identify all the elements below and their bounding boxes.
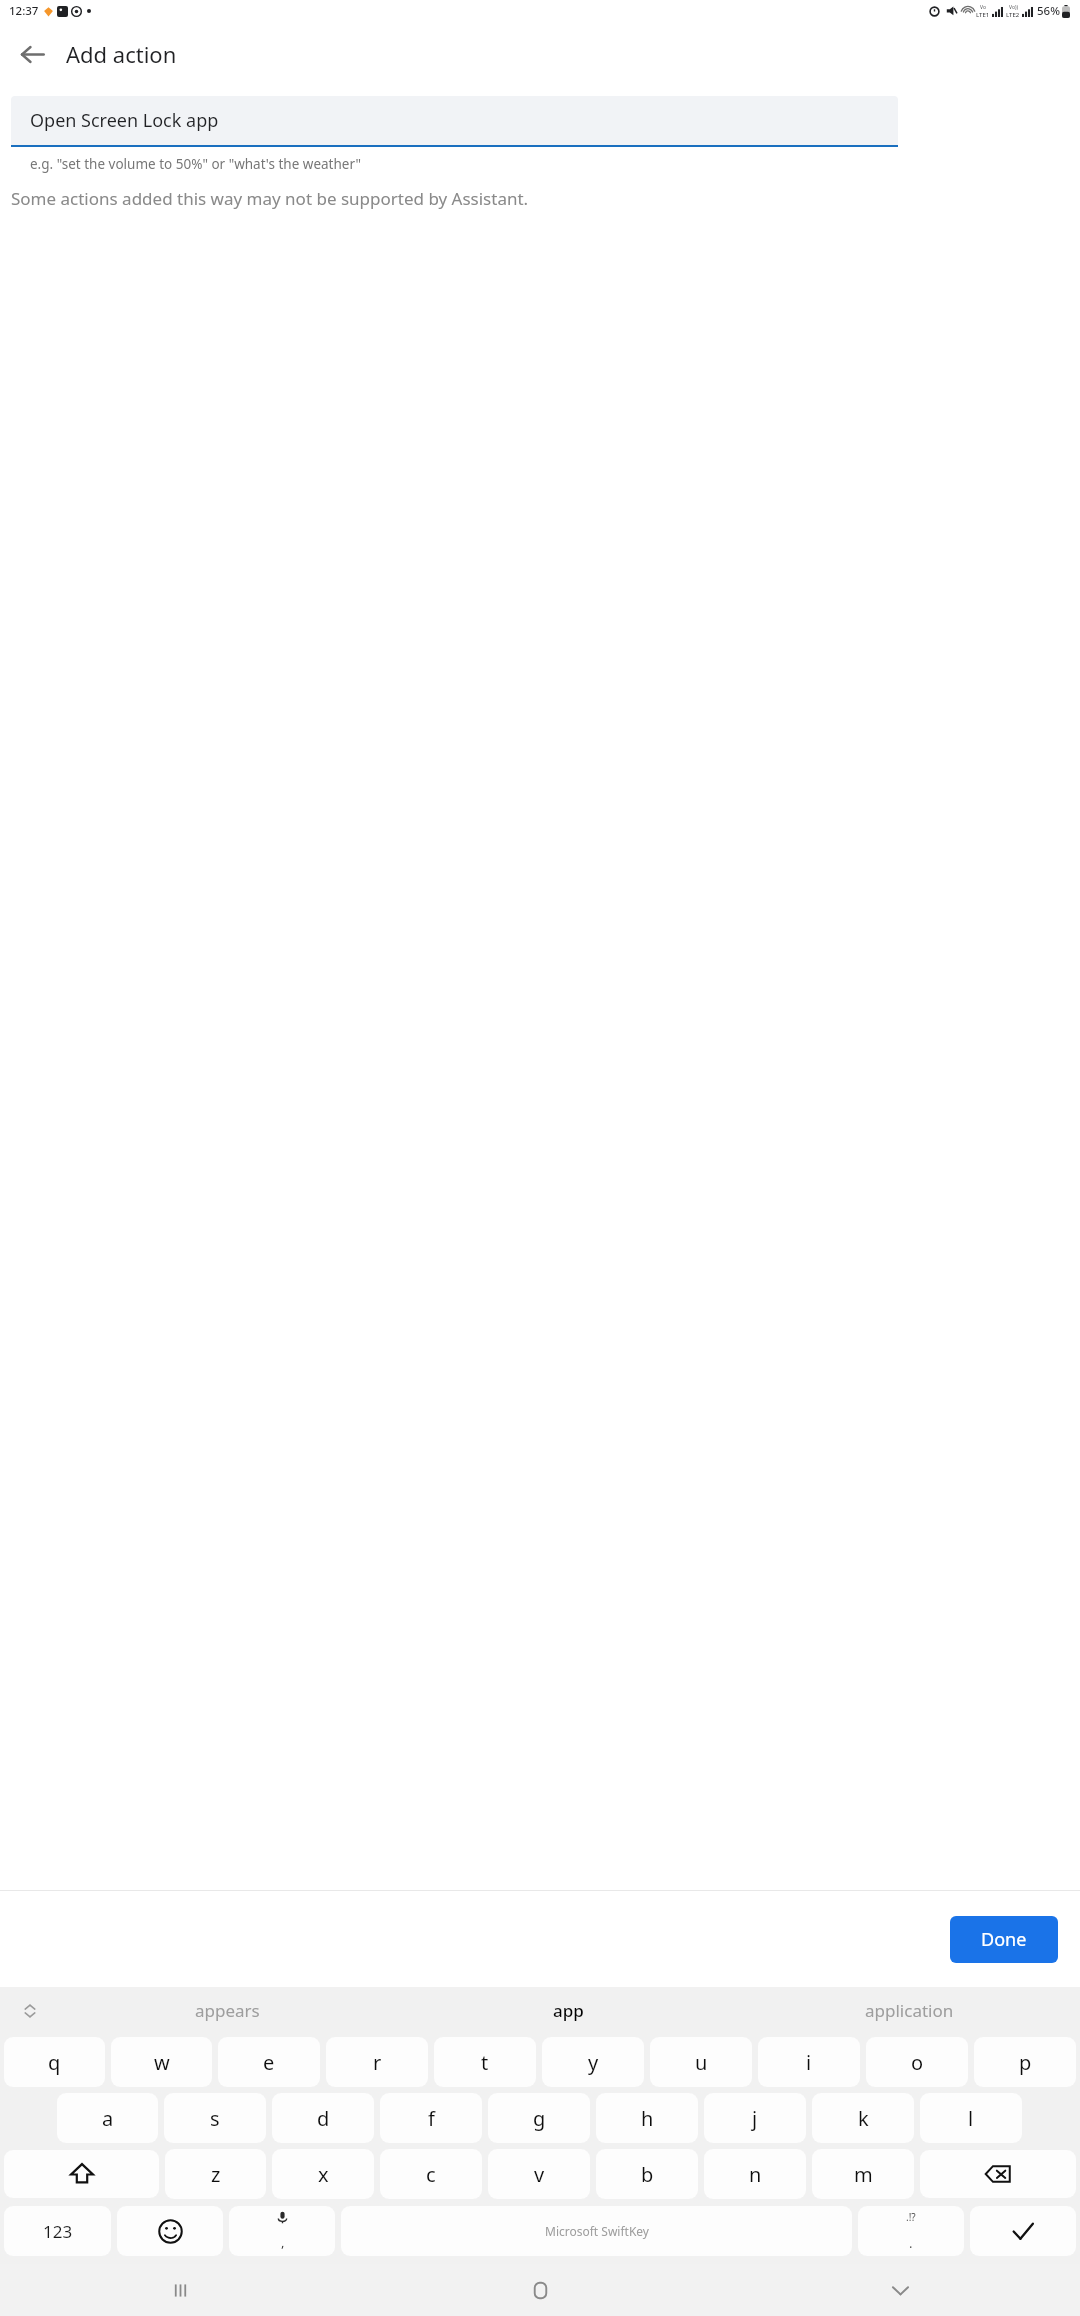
button[interactable]: g — [488, 2093, 590, 2143]
button[interactable]: Open Screen Lock app — [11, 96, 898, 145]
button[interactable]: r — [326, 2037, 428, 2087]
staticText: v — [534, 2161, 545, 2188]
staticText: e.g. "set the volume to 50%" or "what's … — [30, 155, 362, 173]
staticText: t — [481, 2049, 489, 2076]
staticText: 123 — [43, 2220, 73, 2243]
staticText: LTE1 — [976, 11, 990, 19]
button[interactable]: b — [596, 2149, 698, 2199]
button[interactable]: l — [920, 2093, 1022, 2143]
staticText: a — [102, 2105, 114, 2132]
staticText: j — [752, 2105, 758, 2132]
staticText: x — [318, 2161, 329, 2188]
button[interactable]: x — [272, 2149, 374, 2199]
button[interactable]: k — [812, 2093, 914, 2143]
button[interactable]: Numbers — [4, 2206, 111, 2256]
staticText: app — [553, 1999, 584, 2022]
staticText: appears — [195, 1999, 260, 2022]
button[interactable]: h — [596, 2093, 698, 2143]
button[interactable]: Voice input — [229, 2206, 335, 2256]
staticText: s — [210, 2105, 220, 2132]
staticText: d — [317, 2105, 330, 2132]
staticText: h — [641, 2105, 654, 2132]
staticText: c — [426, 2161, 436, 2188]
button[interactable]: Recents — [0, 2264, 360, 2316]
button[interactable]: j — [704, 2093, 806, 2143]
staticText: f — [428, 2105, 435, 2132]
staticText: e — [263, 2049, 275, 2076]
staticText: . — [909, 2234, 913, 2252]
staticText: z — [211, 2161, 221, 2188]
staticText: application — [865, 1999, 954, 2022]
staticText: y — [588, 2049, 599, 2076]
staticText: Vo — [980, 4, 986, 11]
staticText: LTE2 — [1006, 11, 1020, 19]
button[interactable]: app — [398, 1987, 739, 2034]
button[interactable]: n — [704, 2149, 806, 2199]
staticText: n — [749, 2161, 762, 2188]
staticText: .!? — [906, 2210, 916, 2224]
button[interactable]: Expand suggestions — [12, 1993, 48, 2029]
button[interactable]: Done — [950, 1916, 1058, 1963]
button[interactable]: Microsoft SwiftKey — [341, 2206, 852, 2256]
staticText: Some actions added this way may not be s… — [11, 187, 529, 210]
button[interactable]: v — [488, 2149, 590, 2199]
button[interactable]: w — [111, 2037, 212, 2087]
button[interactable]: Punctuation — [858, 2206, 964, 2256]
button[interactable]: e — [218, 2037, 320, 2087]
staticText: i — [806, 2049, 812, 2076]
button[interactable]: a — [57, 2093, 158, 2143]
staticText: b — [641, 2161, 654, 2188]
button[interactable]: Hide keyboard — [720, 2264, 1080, 2316]
button[interactable]: Backspace — [920, 2150, 1076, 2198]
staticText: , — [281, 2233, 285, 2251]
button[interactable]: Emoji — [117, 2206, 223, 2256]
staticText: g — [533, 2105, 546, 2132]
staticText: 56% — [1037, 3, 1060, 19]
staticText: Vo)) — [1009, 4, 1018, 11]
staticText: o — [911, 2049, 924, 2076]
button[interactable]: z — [165, 2149, 266, 2199]
button[interactable]: i — [758, 2037, 860, 2087]
staticText: p — [1019, 2049, 1032, 2076]
staticText: w — [154, 2049, 170, 2076]
staticText: Microsoft SwiftKey — [545, 2223, 649, 2239]
button[interactable]: Back — [8, 30, 56, 78]
staticText: k — [858, 2105, 869, 2132]
button[interactable]: y — [542, 2037, 644, 2087]
staticText: Done — [981, 1927, 1027, 1952]
button[interactable]: Enter — [970, 2206, 1076, 2256]
button[interactable]: s — [164, 2093, 266, 2143]
staticText: Add action — [66, 39, 177, 69]
button[interactable]: m — [812, 2149, 914, 2199]
button[interactable]: application — [739, 1987, 1080, 2034]
staticText: q — [48, 2049, 61, 2076]
button[interactable]: appears — [56, 1987, 398, 2034]
staticText: l — [968, 2105, 974, 2132]
button[interactable]: f — [380, 2093, 482, 2143]
staticText: 12:37 — [9, 3, 39, 19]
button[interactable]: p — [974, 2037, 1076, 2087]
button[interactable]: d — [272, 2093, 374, 2143]
button[interactable]: Home — [360, 2264, 720, 2316]
button[interactable]: c — [380, 2149, 482, 2199]
staticText: u — [695, 2049, 708, 2076]
staticText: Open Screen Lock app — [30, 108, 219, 133]
button[interactable]: u — [650, 2037, 752, 2087]
staticText: m — [854, 2161, 873, 2188]
staticText: r — [373, 2049, 382, 2076]
button[interactable]: o — [866, 2037, 968, 2087]
button[interactable]: t — [434, 2037, 536, 2087]
button[interactable]: q — [4, 2037, 105, 2087]
button[interactable]: Shift — [4, 2150, 159, 2198]
